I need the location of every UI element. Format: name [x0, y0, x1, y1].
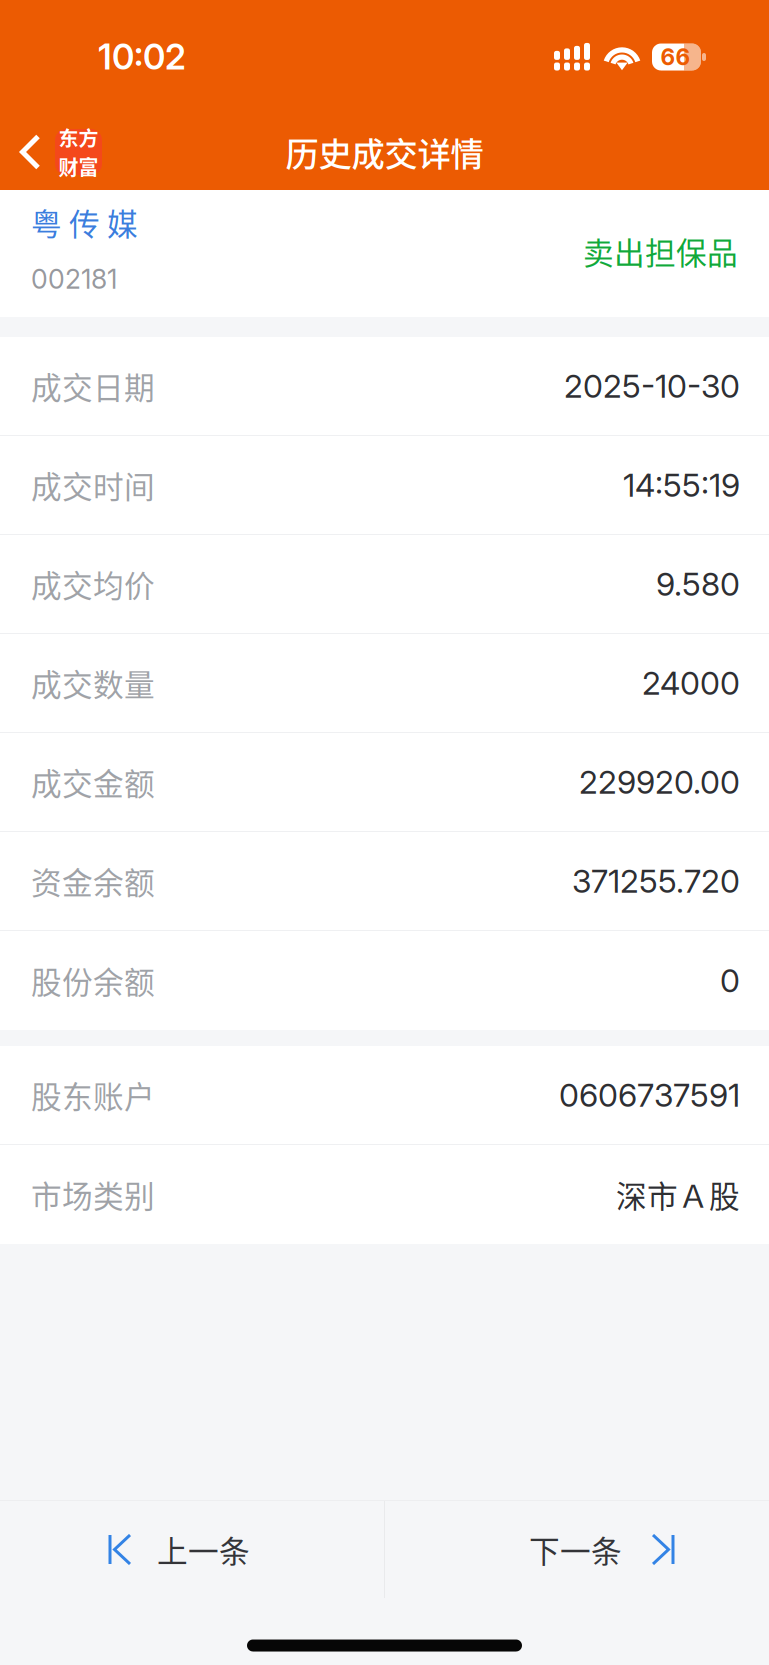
staticText: 粤 传 媒: [31, 200, 138, 244]
button[interactable]: 上一条: [0, 1501, 384, 1598]
staticText: 财富: [58, 152, 98, 181]
staticText: 成交金额: [31, 760, 155, 804]
staticText: 0606737591: [559, 1076, 740, 1114]
button[interactable]: 下一条: [385, 1501, 769, 1598]
button[interactable]: 返回 东方财富: [0, 114, 114, 190]
staticText: 下一条: [529, 1527, 622, 1572]
staticText: 9.580: [656, 565, 740, 603]
staticText: 229920.00: [579, 763, 740, 801]
staticText: 成交均价: [31, 562, 155, 606]
staticText: 股份余额: [31, 958, 155, 1003]
staticText: 2025-10-30: [564, 367, 740, 405]
staticText: 成交日期: [31, 364, 155, 408]
staticText: 66: [660, 43, 690, 71]
staticText: 资金余额: [31, 859, 155, 903]
staticText: 0: [720, 961, 740, 1000]
staticText: 成交数量: [31, 661, 155, 705]
staticText: 10:02: [98, 36, 186, 78]
staticText: 14:55:19: [623, 466, 740, 504]
staticText: 股东账户: [31, 1073, 155, 1117]
staticText: 上一条: [157, 1527, 250, 1572]
staticText: 历史成交详情: [285, 128, 483, 176]
staticText: 371255.720: [572, 862, 740, 900]
staticText: 深市Ａ股: [616, 1172, 740, 1217]
staticText: 24000: [642, 664, 740, 702]
staticText: 市场类别: [31, 1172, 155, 1217]
staticText: 成交时间: [31, 463, 155, 507]
staticText: 东方: [58, 123, 98, 152]
staticText: 卖出担保品: [583, 229, 738, 273]
staticText: 002181: [31, 263, 117, 295]
